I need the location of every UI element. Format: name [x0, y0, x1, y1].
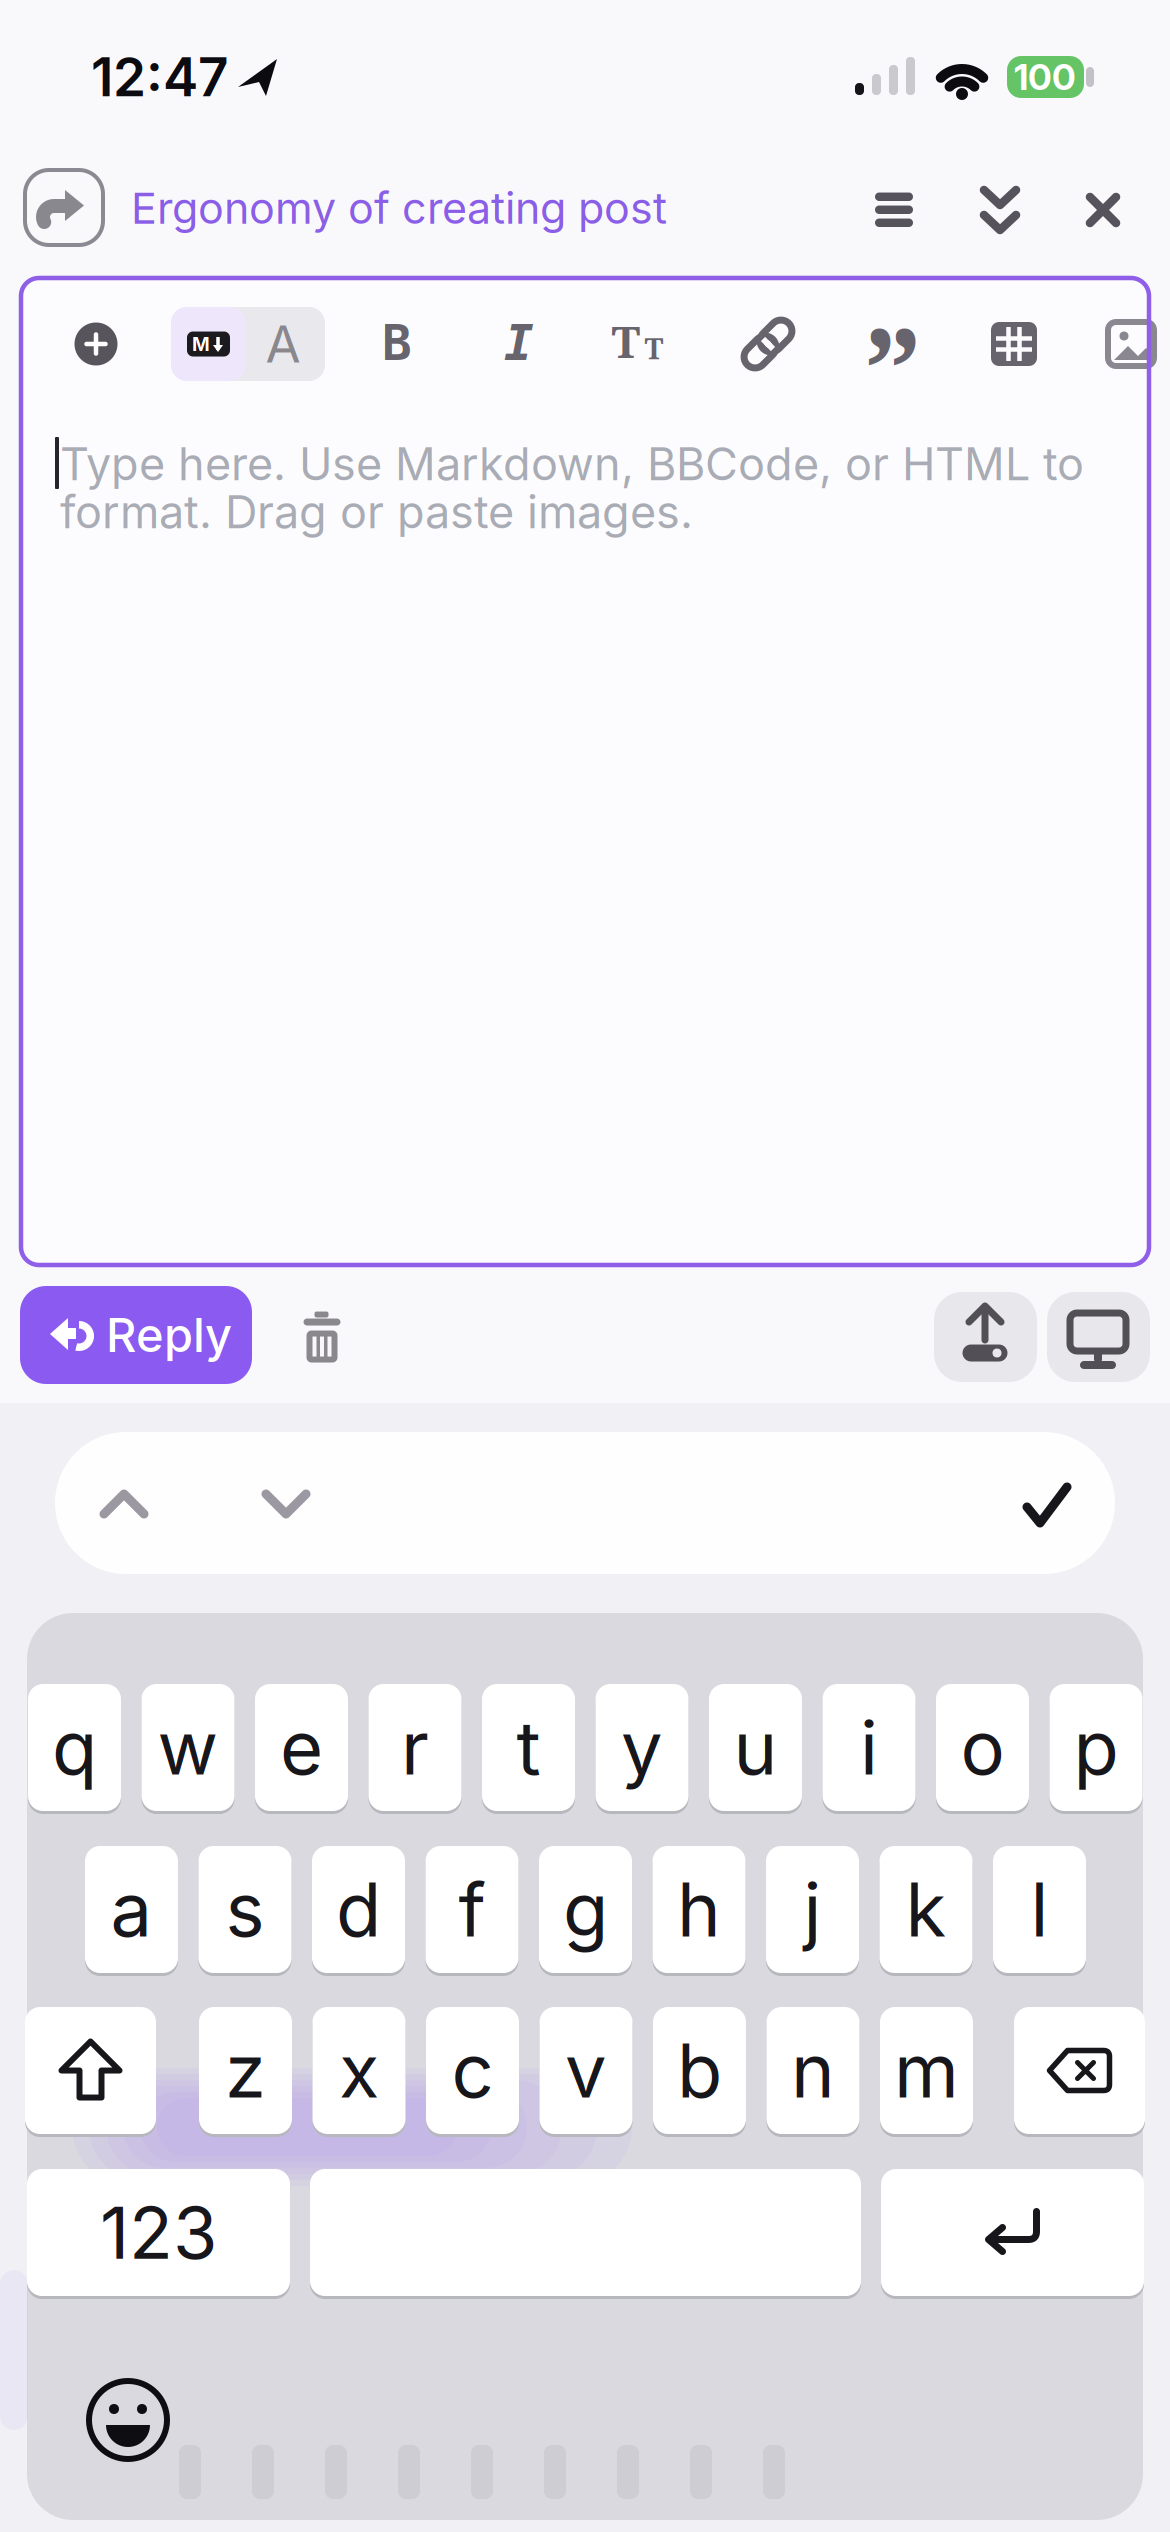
button[interactable]: k	[879, 1846, 972, 1973]
staticText: Reply	[106, 1307, 232, 1363]
button[interactable]: 123	[27, 2169, 290, 2296]
button[interactable]: Previous field	[99, 1485, 149, 1523]
button[interactable]: e	[255, 1684, 348, 1811]
staticText: k	[905, 1865, 946, 1954]
staticText: x	[339, 2026, 379, 2115]
staticText: t	[516, 1703, 540, 1792]
button[interactable]: Emoji	[89, 2381, 167, 2459]
button[interactable]: r	[368, 1684, 461, 1811]
button[interactable]: a	[85, 1846, 178, 1973]
button[interactable]: Next field	[261, 1485, 311, 1523]
button[interactable]: p	[1049, 1684, 1142, 1811]
button[interactable]: Text size	[610, 311, 670, 371]
button[interactable]: c	[426, 2007, 519, 2134]
button[interactable]: o	[936, 1684, 1029, 1811]
button[interactable]: u	[709, 1684, 802, 1811]
staticText: 100	[1014, 55, 1076, 99]
button[interactable]: Bold	[367, 313, 427, 373]
staticText: e	[280, 1703, 323, 1792]
staticText: p	[1073, 1703, 1118, 1792]
button[interactable]: m	[880, 2007, 973, 2134]
button[interactable]: Close	[1087, 194, 1119, 226]
staticText: 12:47	[91, 45, 229, 109]
button[interactable]: d	[312, 1846, 405, 1973]
button[interactable]: Collapse	[980, 185, 1020, 235]
staticText: a	[110, 1865, 152, 1954]
button[interactable]: b	[653, 2007, 746, 2134]
staticText: 123	[100, 2189, 217, 2276]
button[interactable]: Delete draft	[303, 1311, 340, 1362]
button[interactable]: g	[539, 1846, 632, 1973]
button[interactable]: Shift	[25, 2007, 156, 2134]
button[interactable]: Share	[25, 170, 103, 245]
button[interactable]: j	[766, 1846, 859, 1973]
staticText: u	[733, 1703, 777, 1792]
staticText: n	[791, 2026, 835, 2115]
staticText: A	[265, 313, 300, 375]
button[interactable]: Italic	[489, 313, 549, 373]
button[interactable]: Table	[991, 322, 1037, 366]
staticText: Ergonomy of creating post	[131, 182, 667, 234]
button[interactable]: Reply	[20, 1286, 252, 1384]
staticText: c	[451, 2026, 493, 2115]
staticText: format. Drag or paste images.	[60, 485, 693, 539]
button[interactable]: Done	[1023, 1483, 1071, 1527]
staticText: l	[1030, 1865, 1048, 1954]
button[interactable]: t	[482, 1684, 575, 1811]
button[interactable]: l	[993, 1846, 1086, 1973]
button[interactable]: Image	[1106, 320, 1156, 368]
button[interactable]: f	[425, 1846, 518, 1973]
staticText: j	[803, 1865, 821, 1954]
staticText: r	[401, 1703, 429, 1792]
staticText: b	[677, 2026, 722, 2115]
button[interactable]: Delete	[1014, 2007, 1145, 2134]
button[interactable]: s	[198, 1846, 291, 1973]
staticText: s	[225, 1865, 264, 1954]
button[interactable]: z	[199, 2007, 292, 2134]
staticText: w	[157, 1703, 218, 1792]
button[interactable]: w	[141, 1684, 234, 1811]
button[interactable]: Return	[881, 2169, 1144, 2296]
button[interactable]: i	[822, 1684, 915, 1811]
button[interactable]: q	[28, 1684, 121, 1811]
button[interactable]: Markdown	[171, 307, 246, 381]
staticText: T	[611, 311, 640, 371]
staticText: y	[621, 1703, 663, 1792]
staticText: T	[644, 328, 663, 368]
staticText: d	[336, 1865, 381, 1954]
staticText: m	[894, 2026, 959, 2115]
staticText: i	[860, 1703, 878, 1792]
staticText: z	[225, 2026, 266, 2115]
button[interactable]: Toggle preview	[1047, 1292, 1150, 1382]
button[interactable]: v	[539, 2007, 632, 2134]
button[interactable]: Link	[738, 314, 798, 374]
staticText: Type here. Use Markdown, BBCode, or HTML…	[60, 437, 1084, 491]
button[interactable]: y	[595, 1684, 688, 1811]
staticText: q	[52, 1703, 97, 1792]
staticText: M	[192, 332, 210, 355]
staticText: ”	[863, 286, 922, 450]
staticText: h	[677, 1865, 721, 1954]
button[interactable]: h	[652, 1846, 745, 1973]
staticText: B	[382, 314, 412, 372]
button[interactable]: Menu	[875, 192, 913, 227]
staticText: g	[563, 1865, 608, 1954]
button[interactable]: x	[312, 2007, 405, 2134]
button[interactable]: n	[766, 2007, 859, 2134]
staticText: I	[504, 314, 534, 372]
staticText: f	[458, 1865, 485, 1954]
button[interactable]: Quote	[863, 286, 922, 450]
button[interactable]: Upload	[934, 1292, 1037, 1382]
staticText: v	[565, 2026, 607, 2115]
button[interactable]: Insert	[74, 322, 117, 365]
button[interactable]: Rich text	[248, 309, 318, 379]
staticText: o	[960, 1703, 1004, 1792]
